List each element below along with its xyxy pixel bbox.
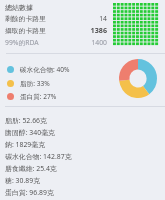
staticText: 剩餘的卡路里 <box>5 14 46 23</box>
staticText: 膳食纖維: 25.4克 <box>5 164 57 173</box>
staticText: 脂肪: 52.66克 <box>5 116 47 125</box>
button[interactable]: 碳水化合物: 40% <box>7 64 70 75</box>
button[interactable]: 脂肪: 33% <box>7 78 50 89</box>
staticText: 14 <box>46 14 107 23</box>
staticText: 膽固醇: 340毫克 <box>5 128 55 137</box>
staticText: 糖: 30.89克 <box>5 176 41 185</box>
staticText: 碳水化合物: 40% <box>20 65 70 74</box>
staticText: 1386 <box>46 25 107 35</box>
staticText: 攝取的卡路里 <box>5 26 46 35</box>
staticText: 蛋白質: 27% <box>20 92 57 101</box>
button[interactable]: 攝取的卡路里 <box>5 25 107 35</box>
staticText: 脂肪: 33% <box>20 79 50 88</box>
staticText: 鈉: 1829毫克 <box>5 140 46 149</box>
staticText: 蛋白質: 96.89克 <box>5 188 54 197</box>
staticText: 1400 <box>39 38 107 47</box>
button[interactable]: 蛋白質: 27% <box>7 91 57 102</box>
staticText: 99%的RDA <box>5 38 39 47</box>
staticText: 總結數據 <box>5 3 33 12</box>
button[interactable]: 剩餘的卡路里 <box>5 13 107 23</box>
button[interactable]: 99%的RDA <box>5 37 107 47</box>
staticText: 碳水化合物: 142.87克 <box>5 152 72 161</box>
